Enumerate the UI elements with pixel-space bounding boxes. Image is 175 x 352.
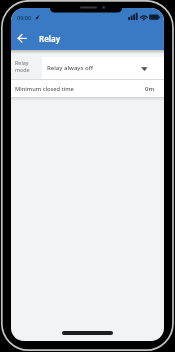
staticText: Relay always off bbox=[47, 64, 93, 72]
staticText: Relay mode bbox=[15, 59, 30, 73]
staticText: Minimum closed time bbox=[15, 85, 74, 93]
button[interactable] bbox=[15, 31, 30, 46]
staticText: 09:00 bbox=[17, 14, 32, 21]
button[interactable]: Relay mode bbox=[11, 57, 164, 80]
staticText: Relay bbox=[39, 33, 61, 44]
staticText: 0m bbox=[145, 85, 155, 93]
button[interactable]: Minimum closed time bbox=[11, 80, 164, 97]
